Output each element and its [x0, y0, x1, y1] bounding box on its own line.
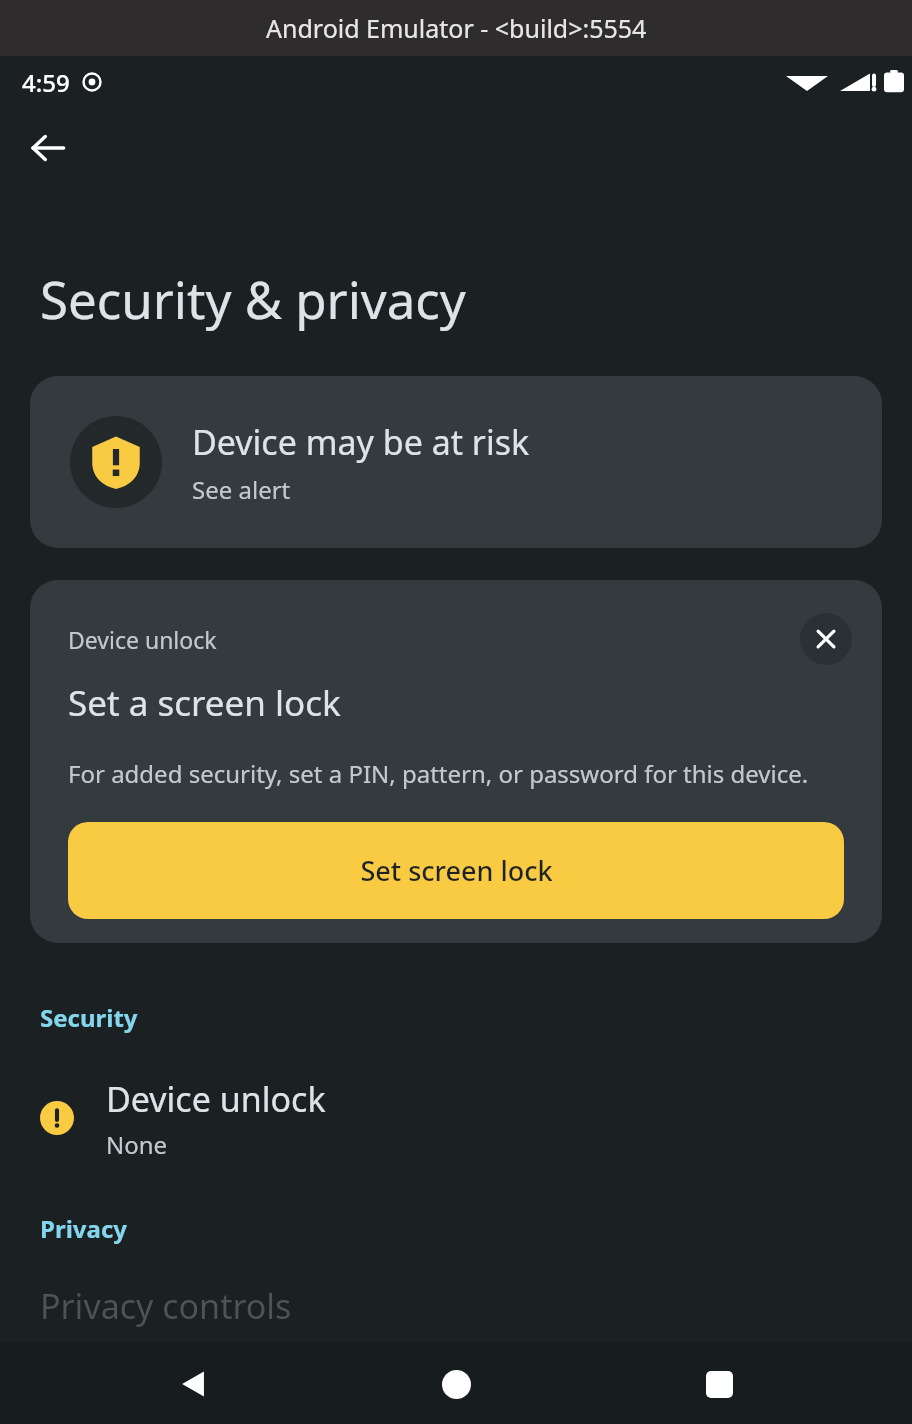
staticText: Set a screen lock — [68, 679, 341, 727]
staticText: For added security, set a PIN, pattern, … — [68, 757, 809, 790]
staticText: Security — [40, 1001, 138, 1034]
button[interactable]: Dismiss — [800, 613, 852, 665]
staticText: Set screen lock — [360, 852, 553, 889]
staticText: Privacy controls — [40, 1283, 292, 1329]
button[interactable]: Back — [14, 114, 82, 182]
button[interactable]: Recent apps — [681, 1346, 757, 1422]
staticText: None — [106, 1128, 168, 1161]
button[interactable]: Set screen lock — [68, 822, 844, 919]
button[interactable]: Device unlock — [0, 1070, 912, 1166]
button[interactable]: Privacy controls — [0, 1283, 912, 1368]
staticText: Device unlock — [106, 1076, 326, 1122]
staticText: Device may be at risk — [192, 419, 530, 465]
button[interactable]: Device may be at risk — [30, 376, 882, 548]
button[interactable]: Home — [418, 1346, 494, 1422]
staticText: 4:59 — [22, 66, 70, 99]
staticText: Privacy — [40, 1212, 127, 1245]
staticText: Android Emulator - <build>:5554 — [266, 11, 647, 45]
staticText: Security & privacy — [40, 264, 466, 333]
staticText: See alert — [192, 473, 291, 506]
button[interactable]: Back — [155, 1346, 231, 1422]
staticText: Device unlock — [68, 624, 217, 655]
